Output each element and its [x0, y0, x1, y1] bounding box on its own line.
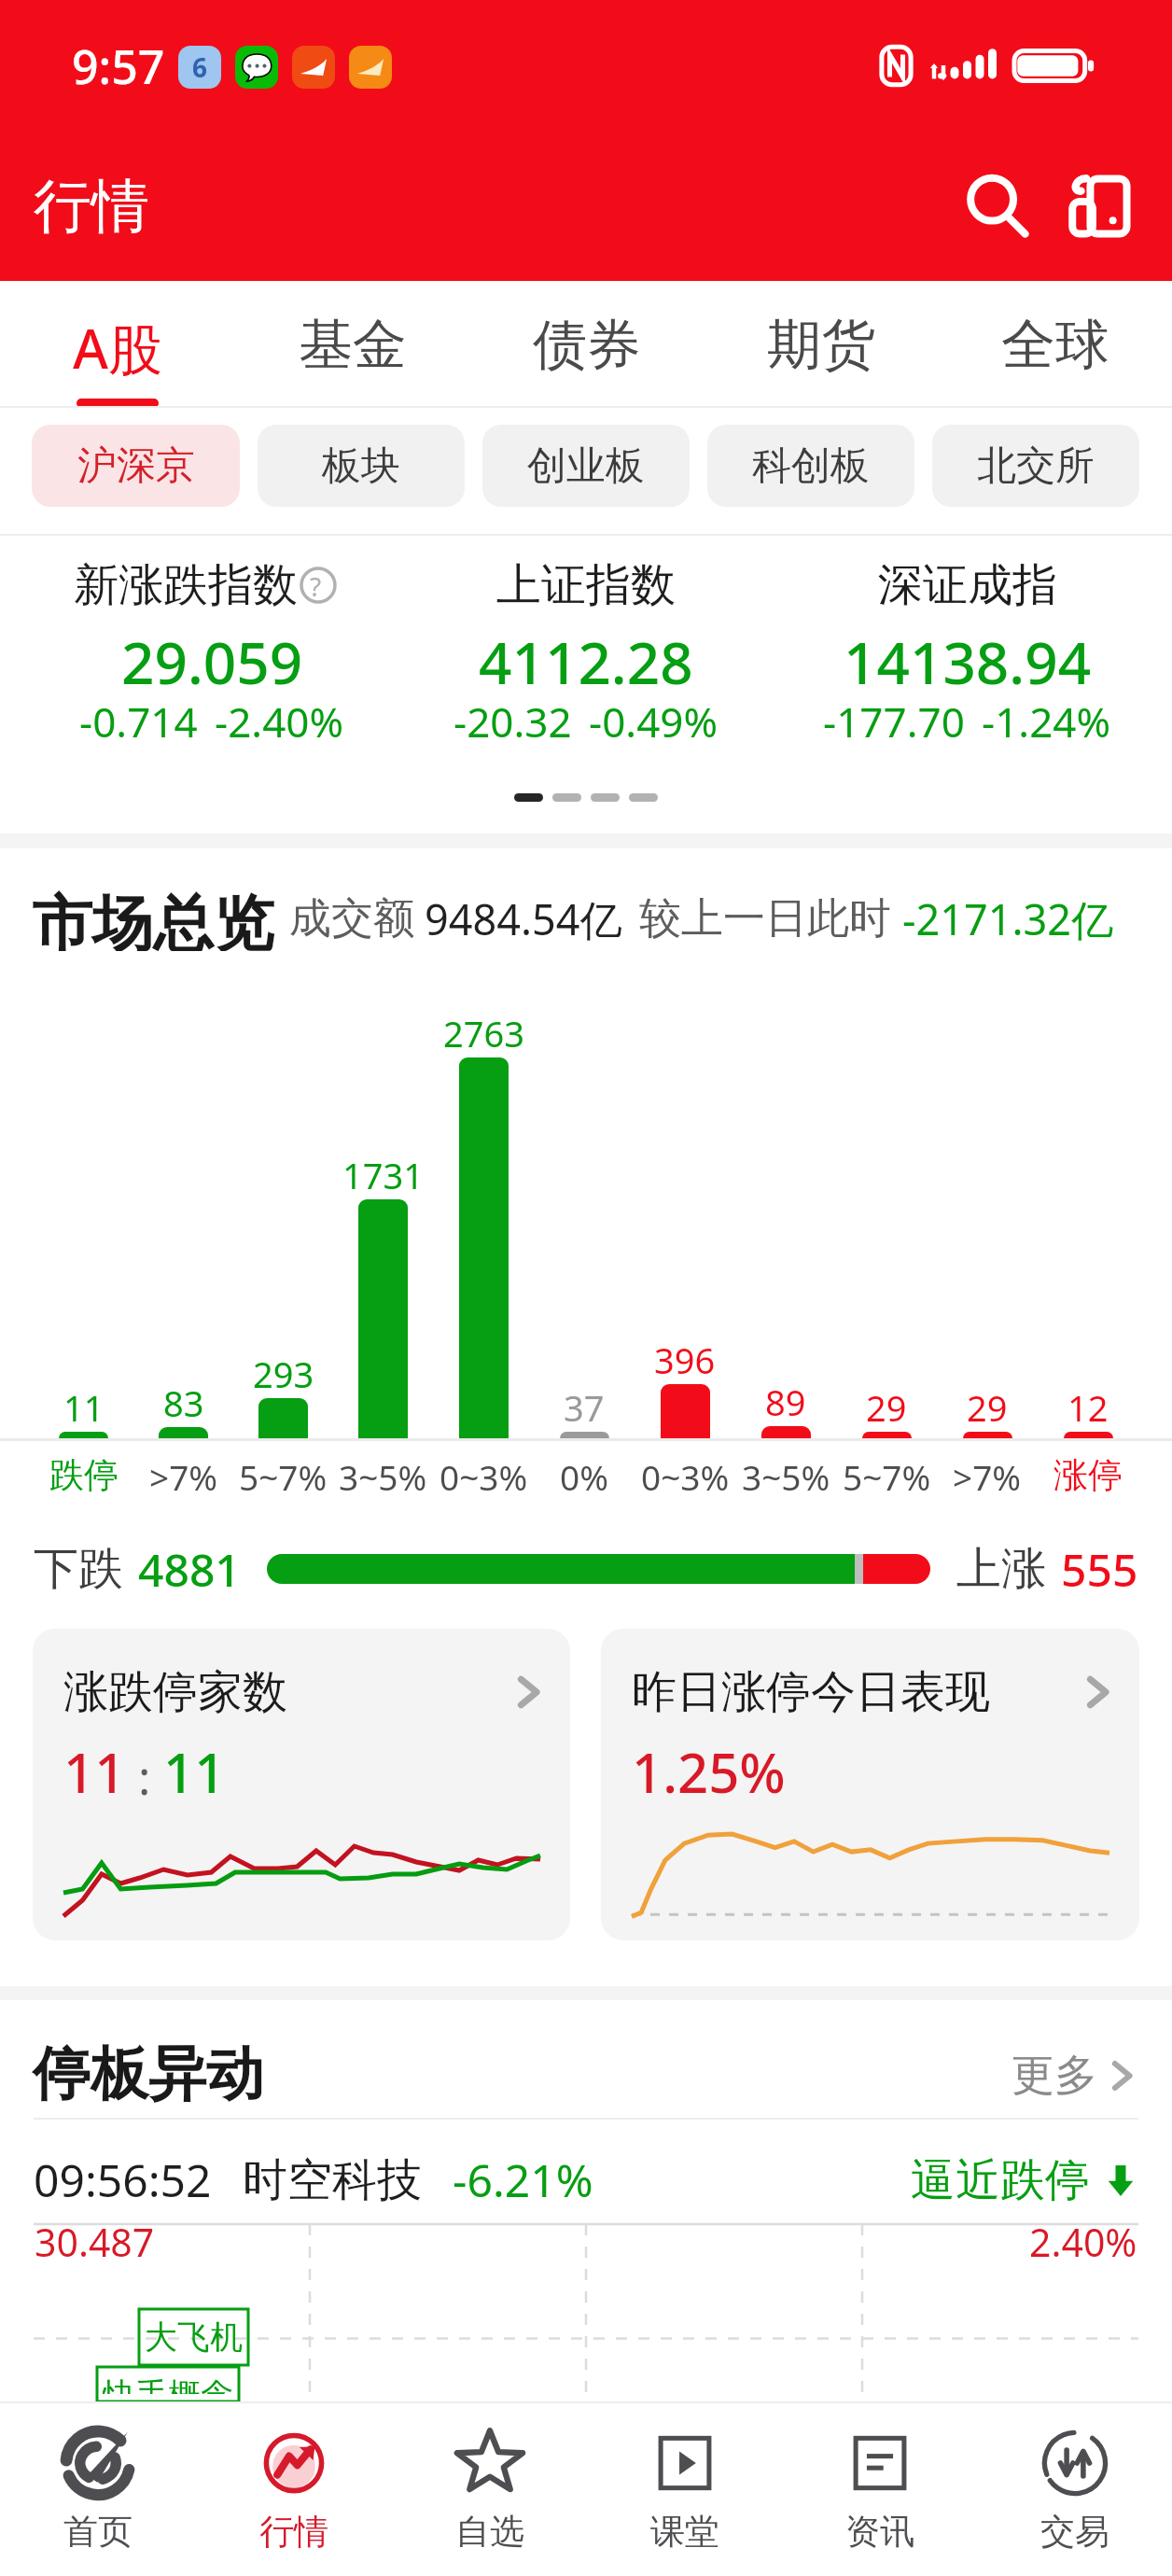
staticText: 市场总览 [32, 886, 274, 951]
staticText: 停板异动 [33, 2037, 264, 2110]
staticText: 上证指数 [496, 557, 676, 613]
staticText: 逼近跌停 [911, 2152, 1090, 2208]
staticText: 成交额 [289, 892, 415, 945]
staticText: 1.25% [632, 1735, 786, 1809]
staticText: 创业板 [527, 441, 645, 491]
staticText: 3~5% [339, 1453, 427, 1500]
staticText: ? [310, 568, 322, 604]
button[interactable]: 资讯 [782, 2403, 977, 2576]
button[interactable]: 行情 [196, 2403, 392, 2576]
staticText: 83 [163, 1379, 204, 1427]
staticText: 12 [1067, 1383, 1109, 1432]
staticText: 4112.28 [479, 623, 693, 701]
staticText: 期货 [767, 311, 875, 379]
button[interactable]: 深证成指 [781, 557, 1172, 757]
staticText: -6.21% [453, 2149, 593, 2210]
staticText: 4881 [138, 1539, 241, 1600]
staticText: >7% [953, 1453, 1022, 1500]
staticText: -2.40% [215, 693, 344, 749]
button[interactable]: 北交所 [932, 425, 1139, 507]
staticText: 涨跌停家数 [63, 1664, 287, 1720]
staticText: 快手概念 [103, 2374, 233, 2394]
button[interactable]: Search [946, 155, 1049, 258]
staticText: 11 [63, 1383, 105, 1432]
button[interactable]: 自选 [392, 2403, 587, 2576]
staticText: 3~5% [742, 1453, 830, 1500]
staticText: 9:57 [72, 35, 165, 98]
button[interactable]: 首页 [0, 2403, 196, 2576]
staticText: 全球 [1001, 311, 1109, 379]
button[interactable]: 科创板 [707, 425, 914, 507]
staticText: 板块 [322, 441, 400, 491]
staticText: 5~7% [843, 1453, 931, 1500]
staticText: 5~7% [239, 1453, 328, 1500]
button[interactable]: A股 [0, 281, 235, 408]
staticText: 89 [765, 1378, 806, 1426]
button[interactable]: 期货 [704, 281, 938, 408]
staticText: -0.714 [79, 693, 198, 749]
staticText: 0~3% [641, 1453, 730, 1500]
staticText: 09:56:52 [34, 2149, 212, 2210]
staticText: 沪深京 [77, 441, 195, 491]
button[interactable]: 板块 [258, 425, 465, 507]
button[interactable]: 新涨跌指数 [0, 557, 390, 757]
staticText: 自选 [455, 2510, 524, 2554]
staticText: 行情 [34, 170, 149, 243]
staticText: -177.70 [823, 693, 965, 749]
staticText: >7% [149, 1453, 218, 1500]
staticText: 基金 [299, 311, 407, 379]
button[interactable]: 09:56:52 [34, 2149, 1138, 2210]
staticText: 时空科技 [243, 2152, 422, 2208]
staticText: 北交所 [977, 441, 1095, 491]
staticText: 行情 [259, 2510, 328, 2554]
staticText: 上涨 [956, 1541, 1046, 1597]
button[interactable]: Quotes [1049, 155, 1151, 258]
staticText: 0% [560, 1453, 608, 1500]
staticText: -20.32 [453, 693, 572, 749]
button[interactable]: 昨日涨停今日表现 [601, 1629, 1139, 1940]
staticText: -1.24% [982, 693, 1111, 749]
staticText: 💬 [241, 52, 273, 83]
staticText: 2763 [443, 1009, 524, 1057]
staticText: 涨停 [1053, 1453, 1123, 1497]
staticText: 14138.94 [844, 623, 1092, 701]
staticText: 29.059 [121, 623, 303, 701]
button[interactable]: 交易 [977, 2403, 1172, 2576]
staticText: 新涨跌指数 [74, 557, 298, 613]
staticText: 1731 [342, 1151, 424, 1199]
staticText: 6 [192, 49, 208, 85]
staticText: : [126, 1745, 163, 1809]
staticText: 首页 [63, 2510, 133, 2554]
staticText: 0~3% [439, 1453, 528, 1500]
staticText: 11 [163, 1735, 226, 1809]
staticText: 较上一日此时 [639, 892, 891, 945]
staticText: 课堂 [650, 2510, 719, 2554]
staticText: 2.40% [1029, 2216, 1137, 2268]
staticText: -2171.32亿 [902, 890, 1113, 947]
staticText: 29 [866, 1383, 907, 1432]
staticText: 债券 [533, 311, 641, 379]
staticText: -0.49% [589, 693, 719, 749]
staticText: A股 [73, 311, 162, 385]
button[interactable]: 更多 [1012, 2049, 1138, 2103]
button[interactable]: 债券 [469, 281, 704, 408]
staticText: 跌停 [49, 1453, 119, 1497]
button[interactable]: 沪深京 [32, 425, 240, 507]
button[interactable]: 涨跌停家数 [33, 1629, 570, 1940]
staticText: 29 [967, 1383, 1008, 1432]
button[interactable]: 创业板 [482, 425, 690, 507]
button[interactable]: 全球 [938, 281, 1172, 408]
staticText: 下跌 [34, 1541, 123, 1597]
staticText: 11 [63, 1735, 126, 1809]
button[interactable]: 上证指数 [390, 557, 781, 757]
button[interactable]: 基金 [235, 281, 469, 408]
staticText: 555 [1061, 1539, 1138, 1600]
staticText: 更多 [1012, 2049, 1097, 2103]
button[interactable]: 课堂 [587, 2403, 782, 2576]
staticText: 30.487 [35, 2216, 155, 2268]
staticText: 293 [253, 1350, 314, 1398]
staticText: 科创板 [752, 441, 870, 491]
staticText: 37 [564, 1383, 605, 1432]
staticText: 深证成指 [878, 557, 1057, 613]
staticText: 交易 [1040, 2510, 1109, 2554]
